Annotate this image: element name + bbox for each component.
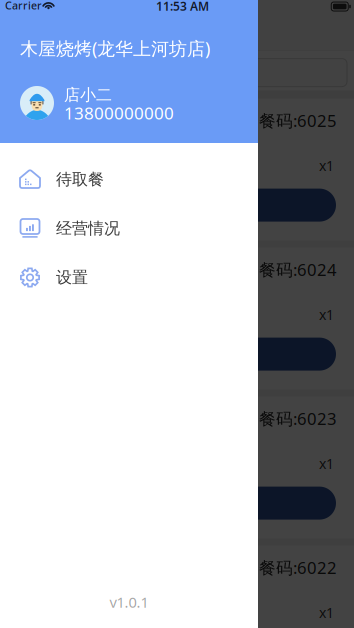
button[interactable]: 经营情况 xyxy=(0,204,258,253)
staticText: v1.0.1 xyxy=(109,592,148,612)
staticText: 待取餐 xyxy=(153,25,201,45)
staticText: 取餐码:6025 xyxy=(242,109,337,132)
button[interactable]: 设置 xyxy=(0,253,258,302)
staticText: x1 xyxy=(319,305,334,324)
staticText: Carrier xyxy=(5,0,42,12)
staticText: 取餐码:6024 xyxy=(242,258,337,281)
staticText: 店小二 xyxy=(64,85,112,105)
button[interactable]: 确认取餐 xyxy=(108,487,336,520)
button[interactable]: 待取餐 xyxy=(0,155,258,204)
staticText: 11:53 AM xyxy=(156,0,209,14)
staticText: 13800000000 xyxy=(64,101,174,125)
staticText: 订单号:202007221153 xyxy=(12,111,154,130)
staticText: x1 xyxy=(319,454,334,473)
staticText: 订单号:202007221153 xyxy=(12,260,154,279)
staticText: 待取餐 xyxy=(56,169,104,190)
staticText: x1 xyxy=(319,156,334,175)
staticText: 取餐码:6023 xyxy=(242,407,337,430)
staticText: 经营情况 xyxy=(56,218,120,239)
staticText: 木屋烧烤(龙华上河坊店) xyxy=(20,36,210,60)
button[interactable]: 确认取餐 xyxy=(108,338,336,371)
staticText: 取餐码:6022 xyxy=(242,556,337,579)
staticText: 设置 xyxy=(56,267,88,288)
button[interactable]: 确认取餐 xyxy=(108,189,336,222)
staticText: x1 xyxy=(319,603,334,622)
staticText: 烤羊肉串 xyxy=(12,157,68,174)
